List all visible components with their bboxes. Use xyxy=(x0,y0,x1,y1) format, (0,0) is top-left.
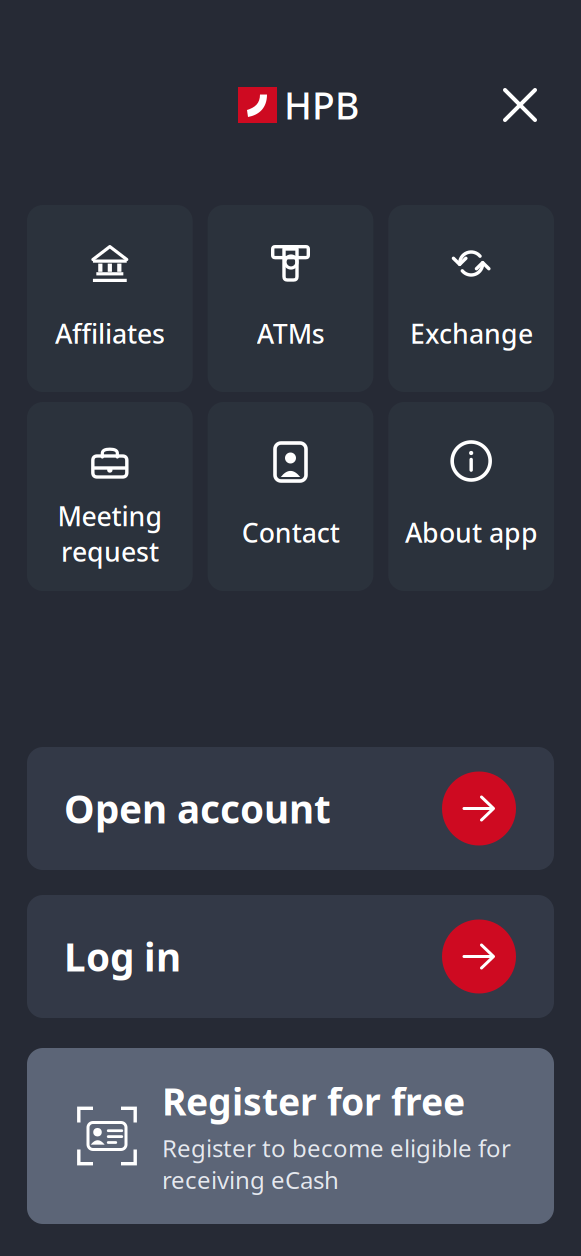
button[interactable]: Close xyxy=(490,75,550,135)
staticText: Meeting request xyxy=(57,498,162,569)
staticText: Log in xyxy=(64,931,181,982)
button[interactable]: Contact xyxy=(208,402,373,591)
button[interactable]: ATMs xyxy=(208,205,373,392)
staticText: Affiliates xyxy=(55,316,165,351)
button[interactable]: Log in xyxy=(27,895,554,1018)
staticText: Exchange xyxy=(410,316,533,351)
button[interactable]: About app xyxy=(388,402,554,591)
staticText: About app xyxy=(405,515,538,550)
staticText: HPB xyxy=(284,80,359,130)
staticText: Register for free xyxy=(162,1076,465,1126)
button[interactable]: Meeting request xyxy=(27,402,193,591)
staticText: Contact xyxy=(241,515,339,550)
button[interactable]: Open account xyxy=(27,747,554,870)
button[interactable]: Affiliates xyxy=(27,205,193,392)
staticText: Open account xyxy=(64,783,331,834)
button[interactable]: Register for free xyxy=(27,1048,554,1224)
staticText: ATMs xyxy=(256,316,324,351)
button[interactable]: Exchange xyxy=(388,205,554,392)
staticText: Register to become eligible for receivin… xyxy=(162,1132,511,1196)
